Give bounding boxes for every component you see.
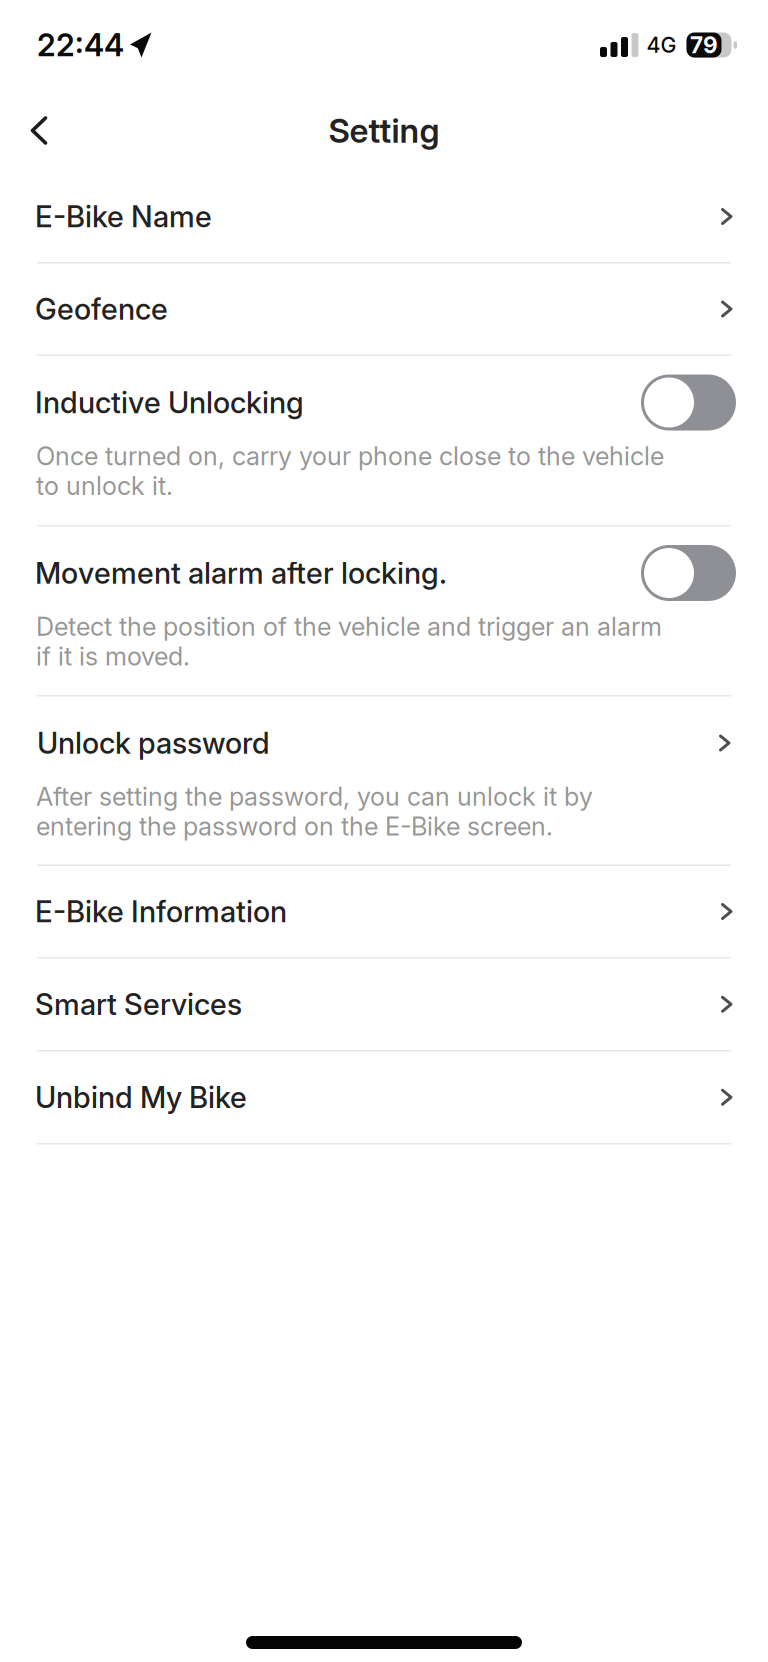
staticText: Movement alarm after locking. [35,556,447,590]
staticText: 4G [646,32,676,58]
staticText: E-Bike Information [35,894,287,929]
staticText: 22:44 [37,27,124,63]
staticText: Once turned on, carry your phone close t… [36,441,664,501]
staticText: Smart Services [35,987,242,1021]
button[interactable]: E-Bike Information [0,866,768,958]
button[interactable]: Unlock password [0,696,768,866]
staticText: Setting [328,111,439,150]
staticText: E-Bike Name [35,199,212,234]
staticText: After setting the password, you can unlo… [36,781,593,841]
button[interactable]: Smart Services [0,958,768,1051]
staticText: Geofence [35,292,168,326]
staticText: Unbind My Bike [35,1080,247,1114]
button[interactable]: Unbind My Bike [0,1051,768,1144]
staticText: Detect the position of the vehicle and t… [36,611,662,671]
button[interactable]: Movement alarm after locking. [641,545,736,601]
button[interactable]: Geofence [0,263,768,356]
button[interactable]: Inductive Unlocking [641,374,736,430]
staticText: Unlock password [37,726,270,760]
button[interactable]: Back [0,116,48,144]
button[interactable]: E-Bike Name [0,171,768,263]
staticText: 79 [690,32,718,58]
staticText: Inductive Unlocking [35,385,304,420]
